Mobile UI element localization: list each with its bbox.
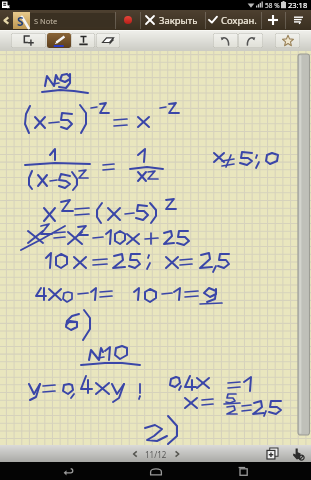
staticText: Закрыть <box>159 14 198 27</box>
staticText: 23:18 <box>288 0 308 10</box>
button[interactable]: Eraser <box>96 33 120 48</box>
button[interactable]: Insert object <box>11 33 46 48</box>
button[interactable]: Add <box>261 10 285 30</box>
button[interactable]: Add page <box>259 445 285 462</box>
button[interactable]: Back <box>48 462 88 480</box>
button[interactable]: Previous page <box>125 446 145 462</box>
button[interactable]: Redo <box>238 33 263 48</box>
button[interactable]: Home <box>136 462 176 480</box>
staticText: S <box>17 13 24 29</box>
staticText: 11/12 <box>145 449 167 460</box>
button[interactable]: Закрыть <box>146 10 202 30</box>
button[interactable]: Record voice <box>118 10 137 30</box>
button[interactable]: Favourite <box>275 33 300 48</box>
button[interactable]: Palm rejection <box>285 445 311 462</box>
button[interactable]: S Note <box>13 12 30 29</box>
button[interactable]: More options <box>285 10 311 30</box>
button[interactable]: Text <box>71 33 95 48</box>
button[interactable]: Pen <box>47 33 71 48</box>
staticText: S Note <box>34 16 58 26</box>
staticText: Сохран. <box>221 14 257 27</box>
staticText: 58 % <box>265 1 280 10</box>
button[interactable]: Back <box>0 10 13 30</box>
button[interactable]: Next page <box>167 446 187 462</box>
button[interactable]: Recents <box>223 462 263 480</box>
button[interactable]: Undo <box>213 33 238 48</box>
button[interactable]: Сохран. <box>209 10 261 30</box>
